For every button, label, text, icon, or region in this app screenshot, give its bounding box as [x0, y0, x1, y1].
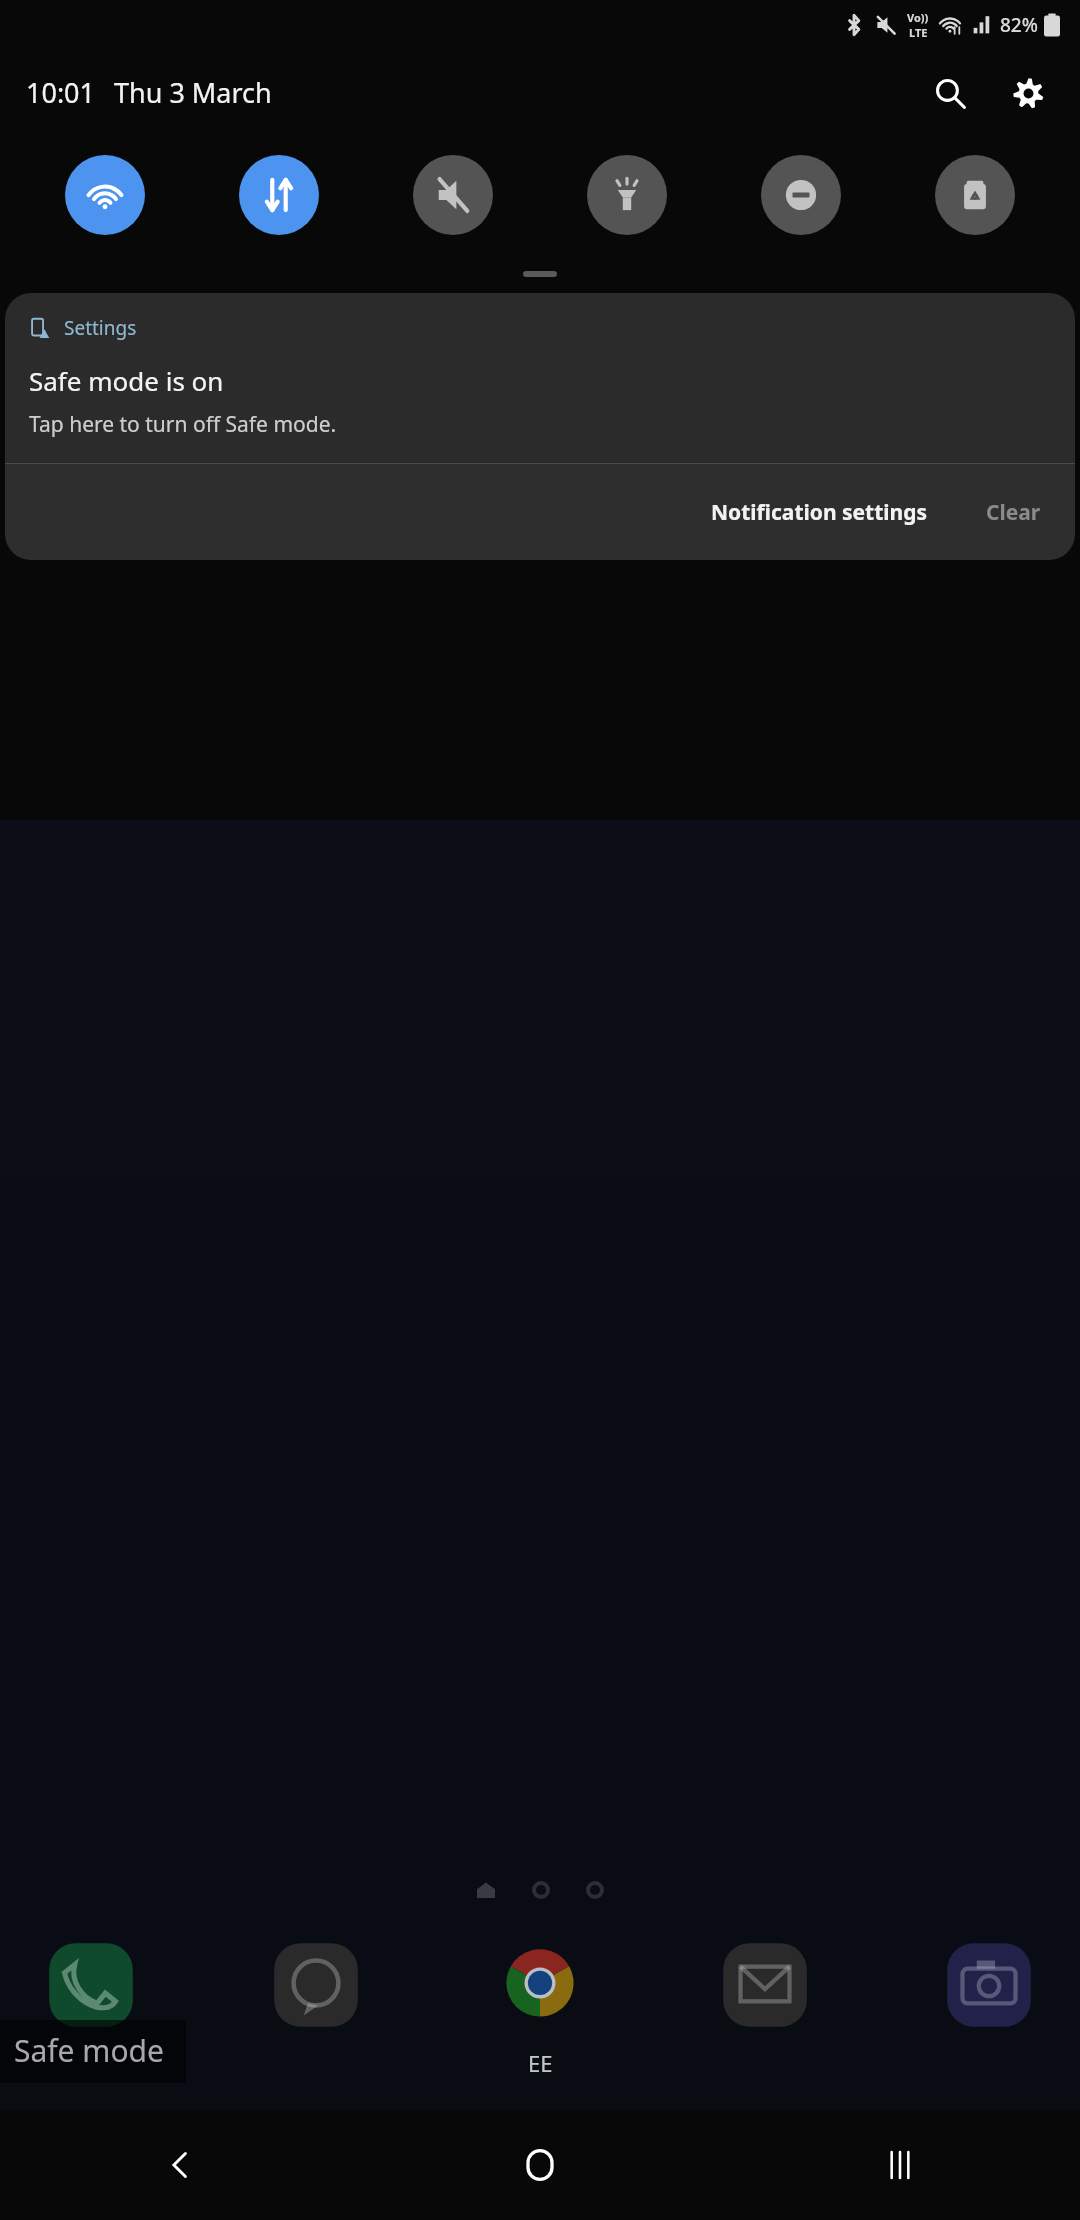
button[interactable]: Phone: [40, 1934, 142, 2036]
button[interactable]: Messages: [265, 1934, 367, 2036]
staticText: Tap here to turn off Safe mode.: [29, 410, 337, 439]
button[interactable]: Camera: [938, 1934, 1040, 2036]
staticText: 10:01: [26, 74, 96, 111]
button[interactable]: Sound off: [413, 155, 493, 235]
button[interactable]: Flashlight: [587, 155, 667, 235]
staticText: Settings: [64, 315, 137, 341]
staticText: 82%: [1000, 12, 1038, 38]
staticText: Safe mode is on: [29, 363, 224, 398]
button[interactable]: Mobile data: [239, 155, 319, 235]
button[interactable]: Wi-Fi: [65, 155, 145, 235]
staticText: EE: [528, 2048, 553, 2078]
button[interactable]: Recents: [720, 2110, 1080, 2220]
button[interactable]: Chrome: [489, 1934, 591, 2036]
button[interactable]: Settings: [5, 293, 1075, 463]
button[interactable]: Power saving: [935, 155, 1015, 235]
button[interactable]: Email: [714, 1934, 816, 2036]
button[interactable]: Notification settings: [695, 486, 944, 539]
button[interactable]: Clear: [970, 486, 1057, 539]
button[interactable]: Back: [0, 2110, 360, 2220]
staticText: LTE: [909, 25, 928, 40]
button[interactable]: Home: [360, 2110, 720, 2220]
button[interactable]: Search: [920, 63, 980, 123]
button[interactable]: Settings: [998, 63, 1058, 123]
staticText: Notification settings: [711, 498, 928, 527]
staticText: Safe mode: [14, 2030, 164, 2071]
staticText: Thu 3 March: [114, 74, 272, 111]
button[interactable]: Do not disturb: [761, 155, 841, 235]
staticText: Vo)): [907, 10, 929, 25]
staticText: Clear: [986, 498, 1041, 527]
